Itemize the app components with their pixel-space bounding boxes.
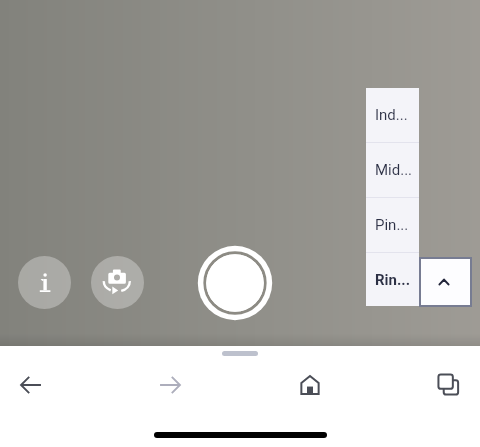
staticText: Mid... <box>375 161 413 179</box>
button[interactable]: Switch camera <box>91 256 144 309</box>
button[interactable]: Capture photo <box>197 245 273 321</box>
staticText: Pin... <box>375 216 409 234</box>
button[interactable]: Information <box>18 256 71 309</box>
button[interactable]: Forward <box>148 363 192 407</box>
button[interactable]: Mid... <box>366 143 419 197</box>
button[interactable]: Ind... <box>366 88 419 142</box>
button[interactable]: Pin... <box>366 198 419 252</box>
staticText: Rin... <box>375 271 411 289</box>
button[interactable]: Expand menu <box>419 257 472 307</box>
button[interactable]: Home <box>288 363 332 407</box>
staticText: Ind... <box>375 106 408 124</box>
button[interactable]: Back <box>9 363 53 407</box>
button[interactable]: Tabs <box>427 363 471 407</box>
button[interactable]: Rin... <box>366 253 419 306</box>
